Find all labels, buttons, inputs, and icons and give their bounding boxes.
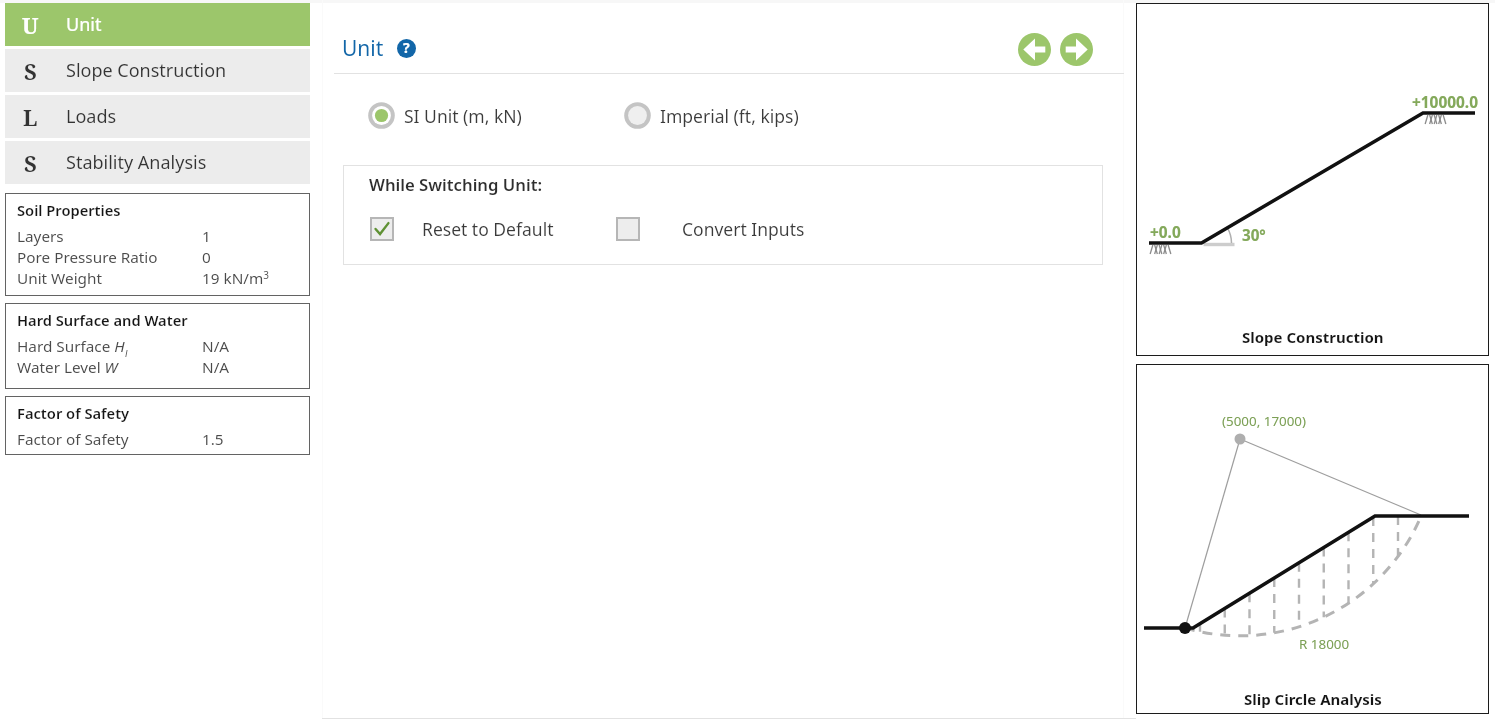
staticText: 30° [1242,225,1266,246]
staticText: Unit Weight [17,268,102,289]
button[interactable]: U [5,3,310,46]
staticText: Hard Surface and Water [17,310,188,330]
staticText: 1.5 [202,429,224,450]
staticText: L [23,102,38,132]
staticText: R 18000 [1299,635,1350,653]
button[interactable]: Factor of Safety [5,396,310,455]
staticText: Slip Circle Analysis [1244,689,1382,709]
staticText: Pore Pressure Ratio [17,247,158,268]
staticText: Reset to Default [422,217,554,241]
staticText: Soil Properties [17,200,121,220]
staticText: U [22,10,39,40]
staticText: Unit [342,34,384,63]
staticText: ? [403,38,410,57]
staticText: Layers [17,226,64,247]
button[interactable]: S [5,141,310,184]
button[interactable]: SI Unit (m, kN) [368,102,522,129]
staticText: Stability Analysis [66,150,207,175]
staticText: S [24,56,37,86]
staticText: N/A [202,357,230,378]
staticText: Unit [66,12,102,37]
staticText: Factor of Safety [17,403,130,423]
staticText: S [24,148,37,178]
staticText: Water Level W [17,357,118,378]
button[interactable]: L [5,95,310,138]
staticText: Imperial (ft, kips) [660,104,799,128]
staticText: Convert Inputs [682,217,805,241]
staticText: Slope Construction [1242,327,1384,347]
staticText: 0 [202,247,211,268]
button[interactable]: Hard Surface and Water [5,303,310,389]
button[interactable]: Help [397,39,416,58]
button[interactable]: Convert Inputs [616,217,805,241]
staticText: +0.0 [1150,222,1181,243]
staticText: 19 kN/m3 [202,268,269,289]
staticText: N/A [202,336,230,357]
staticText: Slope Construction [66,58,227,83]
button[interactable]: Reset to Default [370,217,554,241]
staticText: Hard Surface HL [17,336,130,357]
button[interactable]: Imperial (ft, kips) [624,102,799,129]
staticText: 1 [202,226,211,247]
staticText: SI Unit (m, kN) [404,104,522,128]
button[interactable]: Soil Properties [5,193,310,296]
staticText: (5000, 17000) [1222,412,1307,430]
staticText: While Switching Unit: [369,173,543,196]
staticText: Factor of Safety [17,429,129,450]
button[interactable]: Next [1060,33,1093,66]
staticText: Loads [66,104,117,129]
staticText: +10000.0 [1412,92,1478,113]
button[interactable]: Previous [1018,33,1051,66]
button[interactable]: S [5,49,310,92]
